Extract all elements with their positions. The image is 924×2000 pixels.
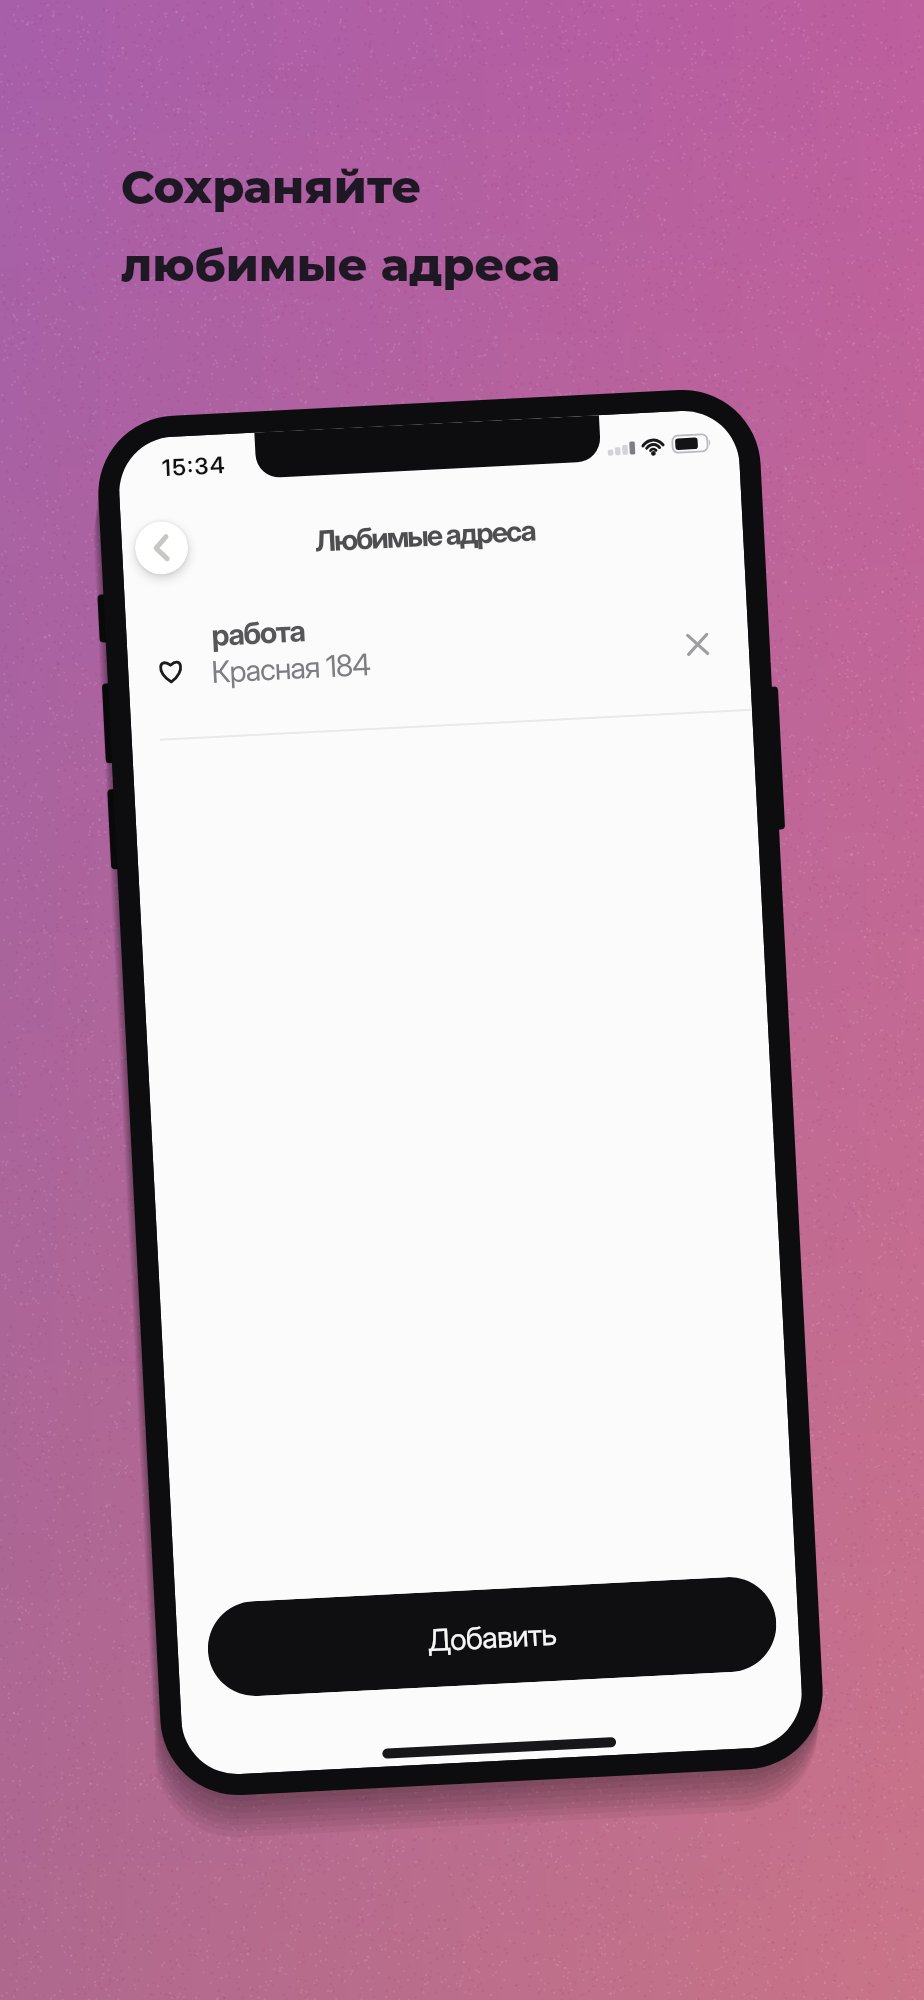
button[interactable]: работа (125, 568, 752, 739)
staticText: Красная 184 (210, 646, 371, 690)
button[interactable]: Добавить (205, 1575, 779, 1698)
staticText: Добавить (427, 1616, 557, 1658)
staticText: любимые адреса (121, 236, 561, 292)
staticText: Сохраняйте (121, 158, 422, 214)
staticText: 15:34 (161, 451, 228, 482)
staticText: Любимые адреса (314, 513, 535, 559)
staticText: работа (211, 612, 305, 653)
button[interactable] (134, 520, 189, 576)
button[interactable] (674, 621, 721, 667)
